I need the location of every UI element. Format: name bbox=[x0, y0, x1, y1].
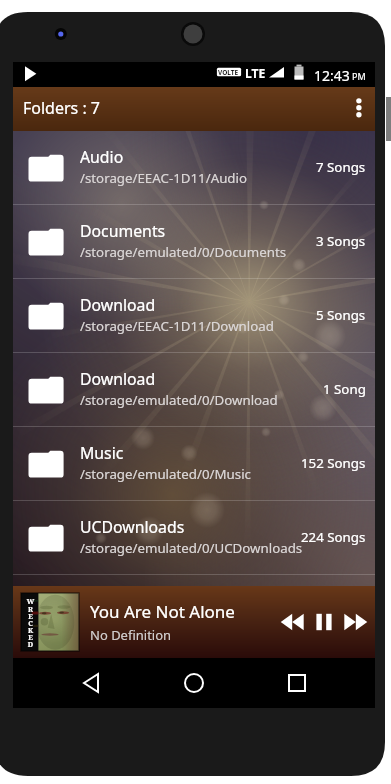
staticText: 12:43 bbox=[314, 66, 350, 85]
staticText: W R E C K E D bbox=[23, 597, 38, 649]
button[interactable]: Audio bbox=[13, 131, 375, 205]
staticText: /storage/EEAC-1D11/Audio bbox=[80, 169, 248, 187]
button[interactable]: UCDownloads bbox=[13, 501, 375, 575]
button[interactable]: Music bbox=[13, 427, 375, 501]
staticText: 224 Songs bbox=[301, 528, 366, 546]
staticText: /storage/emulated/0/Documents bbox=[80, 243, 287, 261]
staticText: Audio bbox=[80, 146, 124, 168]
staticText: 1 Song bbox=[323, 380, 366, 398]
staticText: /storage/emulated/0/UCDownloads bbox=[80, 539, 303, 557]
button[interactable]: Previous bbox=[276, 606, 308, 638]
button[interactable]: Recents bbox=[273, 659, 321, 707]
staticText: /storage/emulated/0/Download bbox=[80, 391, 278, 409]
button[interactable]: Pause bbox=[308, 606, 340, 638]
staticText: VOLTE bbox=[218, 68, 239, 77]
staticText: You Are Not Alone bbox=[90, 600, 235, 623]
button[interactable]: Back bbox=[68, 659, 116, 707]
staticText: LTE bbox=[245, 65, 266, 81]
button[interactable]: More options bbox=[331, 87, 375, 131]
staticText: UCDownloads bbox=[80, 516, 185, 538]
button[interactable]: Next bbox=[340, 606, 372, 638]
staticText: No Definition bbox=[90, 626, 172, 644]
staticText: 7 Songs bbox=[316, 158, 366, 176]
staticText: 3 Songs bbox=[316, 232, 366, 250]
staticText: Download bbox=[80, 294, 156, 316]
button[interactable]: Download bbox=[13, 279, 375, 353]
button[interactable]: Home bbox=[170, 659, 218, 707]
staticText: Folders : 7 bbox=[23, 97, 101, 119]
staticText: Documents bbox=[80, 220, 166, 242]
staticText: 152 Songs bbox=[301, 454, 366, 472]
staticText: 5 Songs bbox=[316, 306, 366, 324]
staticText: /storage/emulated/0/Music bbox=[80, 465, 251, 483]
staticText: PM bbox=[352, 70, 366, 82]
button[interactable]: W R E C K E D bbox=[13, 586, 375, 658]
staticText: Music bbox=[80, 442, 124, 464]
button[interactable]: Documents bbox=[13, 205, 375, 279]
staticText: /storage/EEAC-1D11/Download bbox=[80, 317, 274, 335]
button[interactable]: Download bbox=[13, 353, 375, 427]
staticText: Download bbox=[80, 368, 156, 390]
